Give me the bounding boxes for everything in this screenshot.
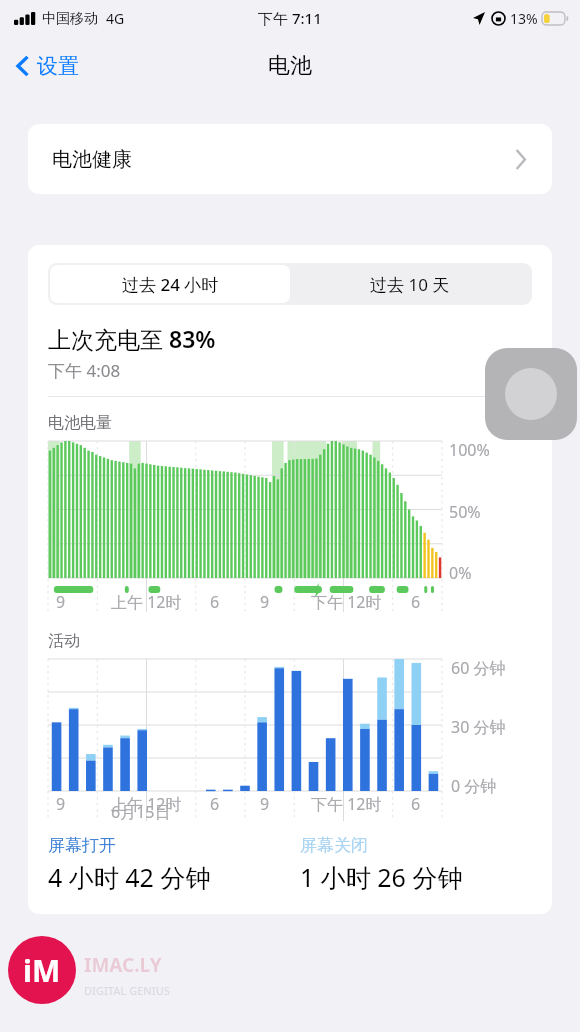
staticText: 电池健康: [52, 147, 132, 172]
staticText: 过去 24 小时: [122, 273, 219, 296]
staticText: 下午 4:08: [48, 359, 121, 382]
staticText: 6月15日: [111, 801, 171, 823]
staticText: IMAC.LY: [84, 952, 162, 978]
staticText: 6: [210, 591, 220, 613]
staticText: 1 小时 26 分钟: [300, 860, 463, 894]
staticText: 上午 12时: [111, 793, 182, 815]
button[interactable]: 过去 10 天: [290, 265, 530, 303]
staticText: 4G: [106, 9, 125, 28]
staticText: 60 分钟: [451, 657, 506, 679]
staticText: 上午 12时: [111, 591, 182, 613]
staticText: 0%: [449, 562, 472, 584]
staticText: 活动: [48, 631, 80, 651]
staticText: 13%: [510, 9, 538, 28]
staticText: 中国移动: [42, 10, 98, 28]
staticText: 电池: [268, 52, 312, 80]
staticText: 屏幕关闭: [300, 835, 368, 856]
staticText: 50%: [449, 501, 481, 523]
staticText: 下午 12时: [311, 591, 382, 613]
button[interactable]: 过去 24 小时: [50, 265, 290, 303]
button[interactable]: 设置: [12, 47, 83, 85]
staticText: 下午 12时: [311, 793, 382, 815]
staticText: 0 分钟: [451, 775, 497, 797]
staticText: 4 小时 42 分钟: [48, 860, 211, 894]
staticText: 过去 10 天: [370, 273, 450, 296]
staticText: 100%: [449, 439, 490, 461]
staticText: 9: [56, 591, 66, 613]
staticText: 电池电量: [48, 413, 112, 433]
button[interactable]: 电池健康: [28, 124, 552, 194]
staticText: 上次充电至 83%: [48, 323, 216, 354]
button[interactable]: AssistiveTouch: [485, 348, 577, 440]
staticText: 9: [260, 793, 270, 815]
staticText: DIGITAL GENIUS: [84, 983, 170, 998]
staticText: 屏幕打开: [48, 835, 116, 856]
staticText: 6: [411, 591, 421, 613]
staticText: 30 分钟: [451, 716, 506, 738]
staticText: 6: [411, 793, 421, 815]
staticText: 9: [56, 793, 66, 815]
staticText: 6: [210, 793, 220, 815]
staticText: 下午 7:11: [258, 8, 322, 28]
staticText: 9: [260, 591, 270, 613]
staticText: 设置: [37, 53, 79, 79]
staticText: iM: [23, 950, 61, 991]
